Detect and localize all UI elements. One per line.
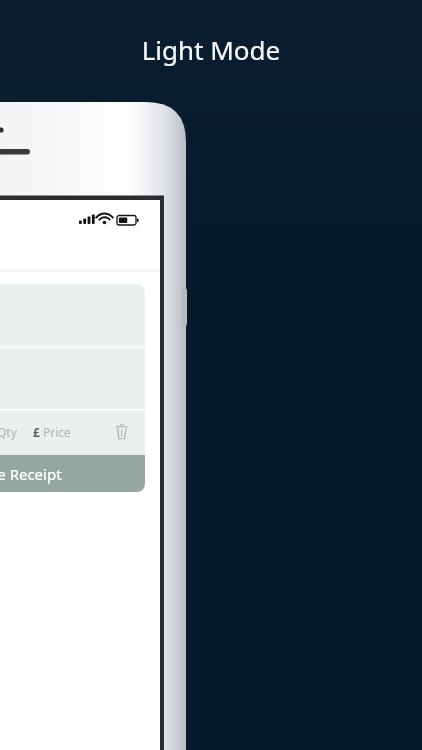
staticText: Light Mode — [0, 32, 422, 67]
staticText: Save Receipt — [0, 464, 62, 484]
staticText: Price — [43, 424, 71, 440]
button[interactable]: Delete — [111, 419, 135, 443]
button[interactable]: £ — [33, 424, 71, 440]
button[interactable]: Qty — [0, 424, 17, 440]
staticText: Qty — [0, 424, 17, 440]
button[interactable]: Save Receipt — [0, 455, 145, 492]
staticText: £ — [33, 424, 40, 440]
